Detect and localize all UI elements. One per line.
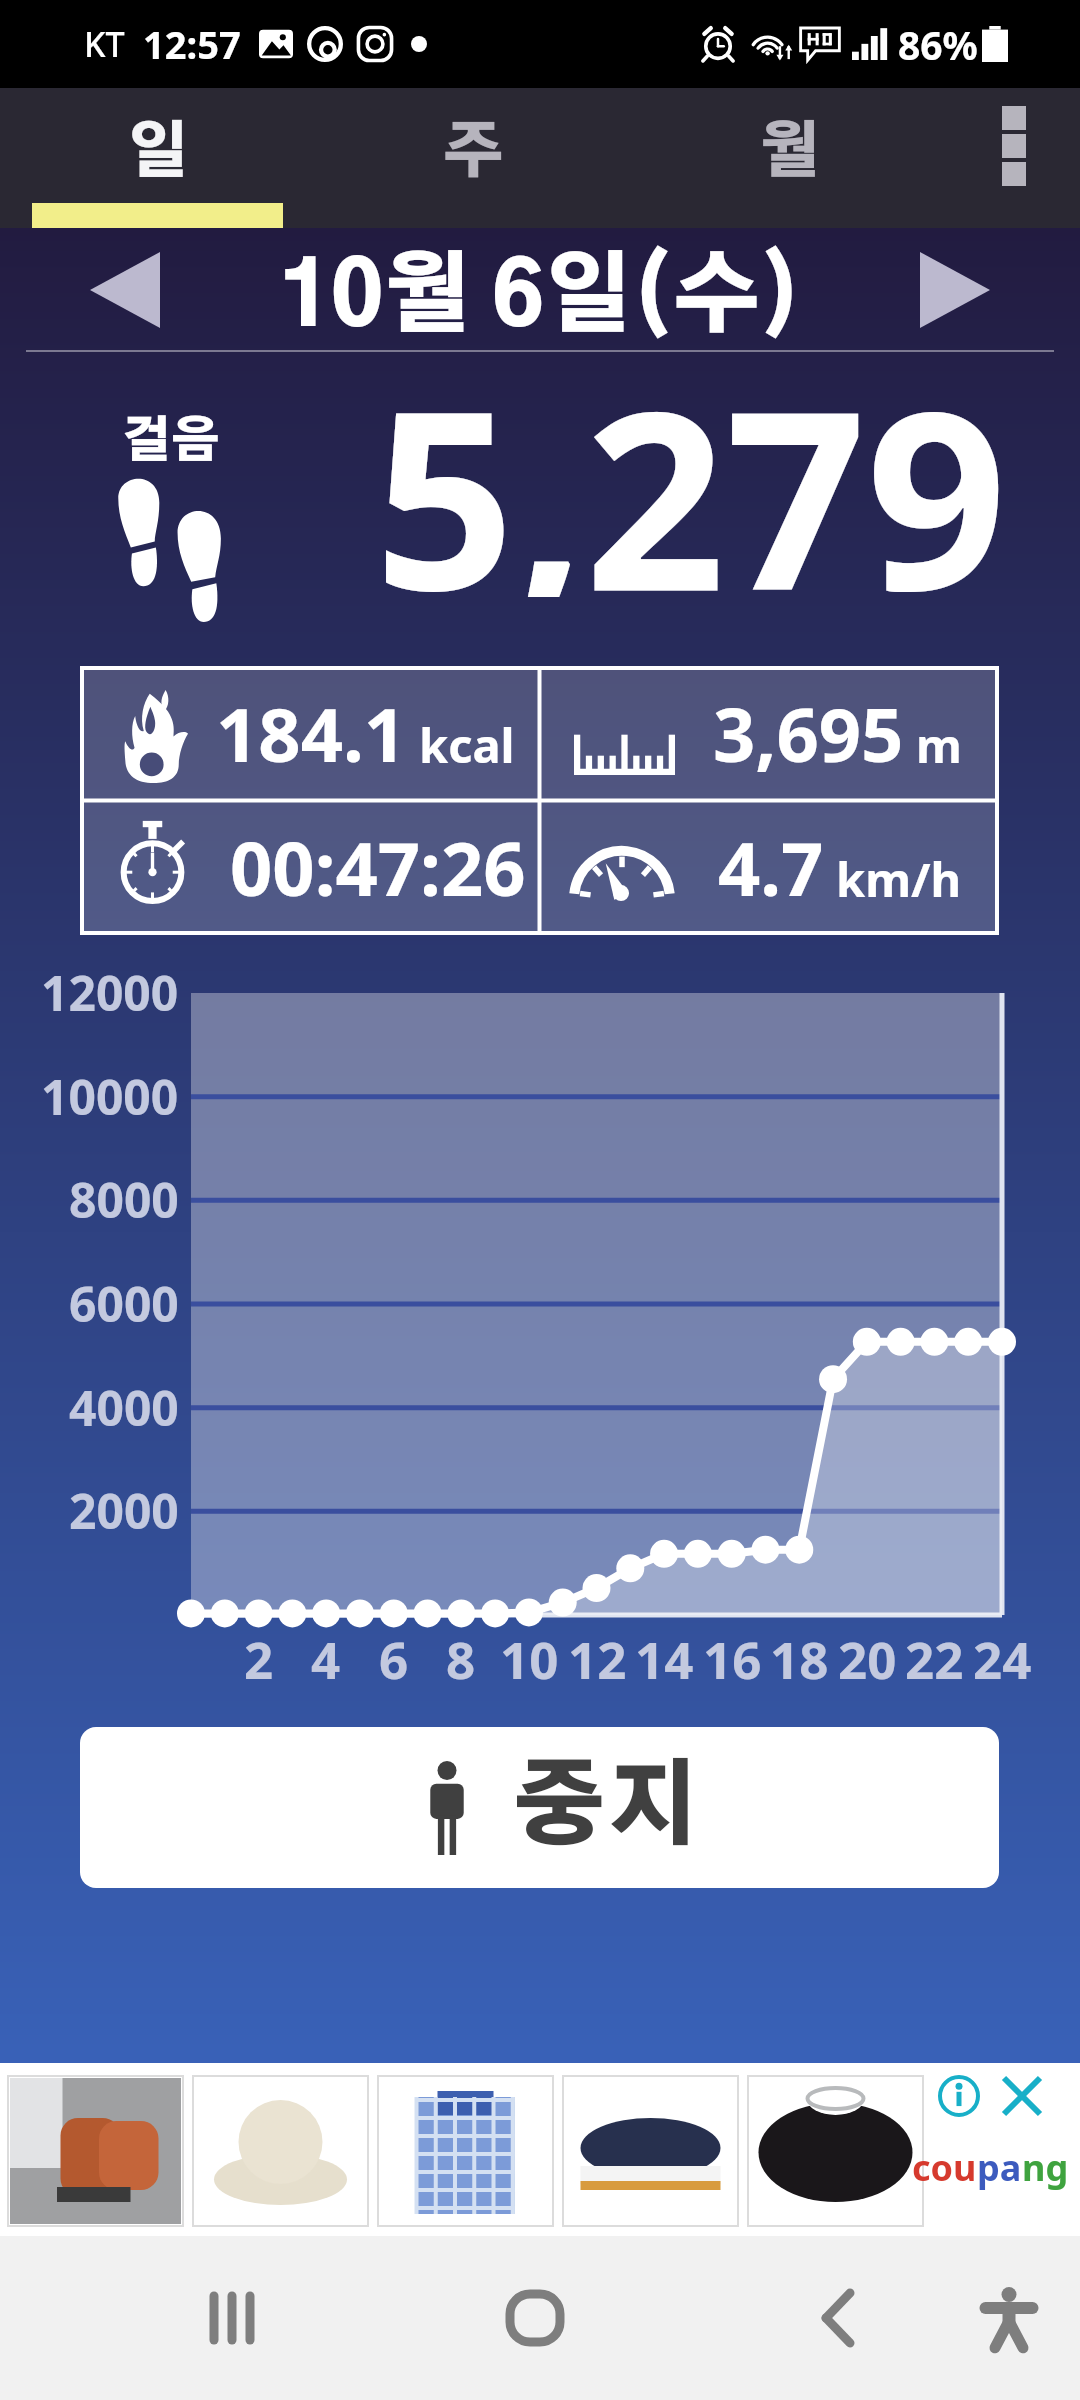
button[interactable] [378, 2076, 553, 2226]
staticText: 8000 [69, 1167, 179, 1232]
button[interactable] [540, 804, 995, 930]
staticText: 6 [379, 1624, 409, 1693]
staticText: 12000 [41, 960, 179, 1025]
button[interactable]: Close ad [1002, 2076, 1042, 2116]
staticText: ng [1022, 2143, 1069, 2192]
staticText: 00:47:26 [230, 817, 526, 918]
button[interactable]: 일 [0, 88, 316, 228]
button[interactable]: Accessibility [919, 2236, 1080, 2400]
button[interactable] [8, 2076, 183, 2226]
staticText: 10월 6일(수) [279, 256, 802, 342]
staticText: 24 [973, 1624, 1032, 1693]
staticText: 3,695 [713, 683, 904, 784]
button[interactable]: Recent apps [142, 2236, 322, 2400]
button[interactable]: Previous day [60, 228, 190, 352]
staticText: 16 [703, 1624, 762, 1693]
staticText: 5,279 [374, 327, 1007, 597]
staticText: 184.1 [216, 683, 407, 784]
button[interactable]: Next day [890, 228, 1020, 352]
staticText: 10 [500, 1624, 559, 1693]
button[interactable]: 월 [632, 88, 948, 228]
button[interactable] [84, 670, 539, 796]
staticText: 주 [443, 124, 505, 184]
button[interactable]: Home [445, 2236, 625, 2400]
button[interactable] [540, 670, 995, 796]
button[interactable] [193, 2076, 368, 2226]
staticText: 중지 [513, 1764, 699, 1855]
staticText: 일 [127, 124, 189, 184]
staticText: 86% [898, 18, 978, 71]
button[interactable]: More options [948, 88, 1080, 228]
staticText: pa [977, 2143, 1022, 2192]
staticText: 4000 [69, 1375, 179, 1440]
staticText: 2 [244, 1624, 274, 1693]
staticText: 22 [905, 1624, 964, 1693]
button[interactable]: Ad info [938, 2075, 980, 2117]
button[interactable]: Back [748, 2236, 928, 2400]
staticText: 10000 [41, 1064, 179, 1129]
staticText: m [916, 713, 962, 777]
button[interactable]: 중지 [80, 1727, 999, 1888]
staticText: kcal [419, 713, 515, 777]
staticText: 8 [446, 1624, 476, 1693]
staticText: 12:57 [143, 18, 241, 70]
button[interactable] [748, 2076, 923, 2226]
staticText: 6000 [69, 1271, 179, 1336]
staticText: 4 [311, 1624, 341, 1693]
staticText: 2000 [69, 1478, 179, 1543]
button[interactable]: 주 [316, 88, 632, 228]
staticText: km/h [836, 847, 962, 911]
staticText: 4.7 [718, 817, 824, 918]
staticText: 20 [838, 1624, 897, 1693]
staticText: KT [84, 21, 125, 67]
staticText: cou [912, 2143, 977, 2192]
staticText: 18 [770, 1624, 829, 1693]
staticText: 12 [568, 1624, 627, 1693]
staticText: 월 [759, 124, 821, 184]
button[interactable] [84, 804, 539, 930]
staticText: 걸음 [122, 419, 220, 467]
staticText: 14 [635, 1624, 694, 1693]
button[interactable] [563, 2076, 738, 2226]
